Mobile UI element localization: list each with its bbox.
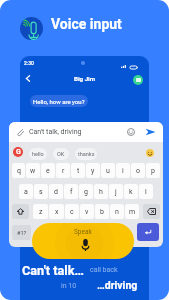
staticText: k	[129, 188, 133, 196]
staticText: 2:30	[24, 60, 34, 66]
button[interactable]: t	[71, 163, 85, 178]
button[interactable]: r	[56, 163, 70, 178]
button[interactable]: d	[49, 184, 63, 199]
staticText: y	[91, 167, 95, 175]
button[interactable]: m	[125, 204, 139, 219]
button[interactable]: Gboard	[13, 147, 23, 157]
button[interactable]: l	[139, 184, 153, 199]
staticText: x	[55, 208, 59, 216]
staticText: g	[84, 188, 88, 196]
staticText: in 10	[61, 282, 77, 290]
staticText: …driving	[97, 279, 138, 291]
staticText: r	[62, 167, 65, 175]
staticText: thanks	[78, 151, 95, 157]
staticText: z	[39, 208, 43, 216]
button[interactable]: e	[41, 163, 55, 178]
staticText: a	[24, 188, 28, 196]
button[interactable]: k	[124, 184, 138, 199]
staticText: u	[106, 167, 110, 175]
button[interactable]: Emoji	[146, 149, 154, 157]
staticText: o	[136, 167, 140, 175]
button[interactable]: OK	[53, 148, 69, 160]
button[interactable]: w	[26, 163, 40, 178]
button[interactable]: u	[101, 163, 115, 178]
button[interactable]: s	[34, 184, 48, 199]
button[interactable]: z	[33, 204, 48, 219]
staticText: v	[85, 208, 89, 216]
button[interactable]: i	[116, 163, 130, 178]
staticText: c	[70, 208, 74, 216]
button[interactable]: a	[19, 184, 33, 199]
button[interactable]: h	[94, 184, 108, 199]
staticText: d	[54, 188, 58, 196]
button[interactable]: Shift	[12, 204, 29, 219]
button[interactable]: Symbols	[12, 225, 31, 240]
staticText: Voice input	[51, 16, 122, 32]
button[interactable]: f	[64, 184, 78, 199]
staticText: m	[129, 208, 136, 216]
staticText: b	[100, 208, 104, 216]
staticText: #1?	[17, 230, 27, 236]
button[interactable]: y	[86, 163, 100, 178]
staticText: Big Jim	[74, 75, 96, 82]
button[interactable]: hello	[29, 148, 47, 160]
staticText: s	[39, 188, 43, 196]
staticText: l	[145, 188, 147, 196]
button[interactable]: q	[12, 163, 25, 178]
button[interactable]: Enter	[137, 223, 159, 241]
button[interactable]: Back	[21, 71, 35, 85]
button[interactable]: o	[131, 163, 145, 178]
staticText: hello	[32, 151, 44, 157]
staticText: t	[77, 167, 80, 175]
staticText: Hello, how are you?	[33, 98, 85, 105]
button[interactable]: x	[49, 204, 64, 219]
button[interactable]: Contact avatar	[133, 75, 143, 85]
staticText: p	[151, 167, 155, 175]
staticText: OK	[57, 151, 65, 157]
staticText: n	[115, 208, 119, 216]
staticText: w	[30, 167, 36, 175]
button[interactable]: p	[146, 163, 160, 178]
staticText: G	[16, 148, 21, 156]
staticText: j	[115, 188, 117, 196]
button[interactable]: b	[95, 204, 109, 219]
button[interactable]: n	[110, 204, 124, 219]
staticText: e	[46, 167, 50, 175]
button[interactable]: thanks	[75, 148, 97, 160]
staticText: q	[17, 167, 21, 175]
staticText: i	[122, 167, 124, 175]
staticText: Can't talk…	[22, 263, 84, 278]
staticText: Can't talk, driving	[29, 128, 82, 136]
button[interactable]: g	[79, 184, 93, 199]
button[interactable]: c	[65, 204, 79, 219]
staticText: call back	[90, 266, 118, 274]
button[interactable]: j	[109, 184, 123, 199]
staticText: f	[70, 188, 73, 196]
button[interactable]: Speak	[32, 223, 134, 259]
button[interactable]: v	[80, 204, 94, 219]
staticText: Speak	[74, 228, 92, 236]
button[interactable]: Backspace	[143, 204, 160, 219]
staticText: h	[99, 188, 103, 196]
